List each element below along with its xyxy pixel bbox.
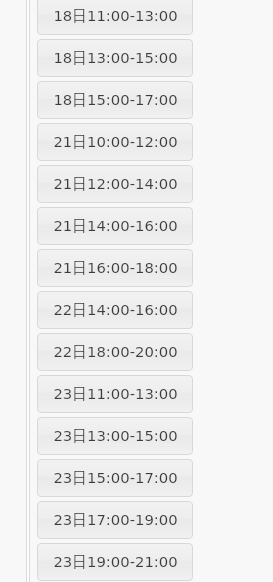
- button[interactable]: 23日13:00-15:00: [37, 417, 193, 455]
- button[interactable]: 21日14:00-16:00: [37, 207, 193, 245]
- staticText: 23日11:00-13:00: [53, 385, 178, 404]
- button[interactable]: 18日11:00-13:00: [37, 0, 193, 35]
- staticText: 21日10:00-12:00: [53, 133, 178, 152]
- staticText: 21日14:00-16:00: [53, 217, 178, 236]
- staticText: 23日13:00-15:00: [53, 427, 178, 446]
- button[interactable]: 22日18:00-20:00: [37, 333, 193, 371]
- button[interactable]: 23日11:00-13:00: [37, 375, 193, 413]
- button[interactable]: 21日12:00-14:00: [37, 165, 193, 203]
- staticText: 18日11:00-13:00: [53, 7, 178, 26]
- staticText: 18日15:00-17:00: [53, 91, 178, 110]
- button[interactable]: 23日15:00-17:00: [37, 459, 193, 497]
- staticText: 23日15:00-17:00: [53, 469, 178, 488]
- staticText: 21日16:00-18:00: [53, 259, 178, 278]
- staticText: 23日19:00-21:00: [53, 553, 178, 572]
- button[interactable]: 22日14:00-16:00: [37, 291, 193, 329]
- button[interactable]: 18日15:00-17:00: [37, 81, 193, 119]
- staticText: 23日17:00-19:00: [53, 511, 178, 530]
- staticText: 22日14:00-16:00: [53, 301, 178, 320]
- staticText: 22日18:00-20:00: [53, 343, 178, 362]
- button[interactable]: 23日19:00-21:00: [37, 543, 193, 581]
- staticText: 21日12:00-14:00: [53, 175, 178, 194]
- button[interactable]: 21日16:00-18:00: [37, 249, 193, 287]
- button[interactable]: 18日13:00-15:00: [37, 39, 193, 77]
- button[interactable]: 23日17:00-19:00: [37, 501, 193, 539]
- button[interactable]: 21日10:00-12:00: [37, 123, 193, 161]
- staticText: 18日13:00-15:00: [53, 49, 178, 68]
